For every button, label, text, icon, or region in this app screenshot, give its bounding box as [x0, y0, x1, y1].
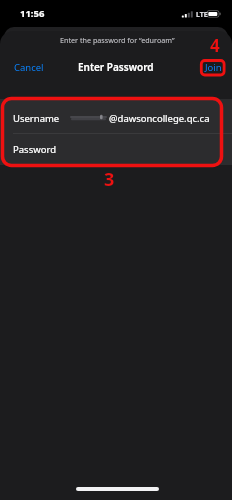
staticText: Enter the password for “eduroam”	[60, 35, 175, 45]
button[interactable]: Cancel	[0, 54, 52, 81]
button[interactable]: Username	[0, 99, 232, 133]
staticText: Join	[205, 61, 222, 74]
staticText: @dawsoncollege.qc.ca	[109, 112, 210, 125]
button[interactable]: Password	[0, 134, 232, 165]
staticText: Password	[13, 143, 56, 156]
staticText: Cancel	[14, 61, 44, 74]
staticText: Enter Password	[78, 60, 154, 74]
button[interactable]: Join	[197, 54, 232, 81]
staticText: 11:56	[20, 7, 45, 20]
staticText: Username	[13, 112, 60, 125]
staticText: LTE	[196, 10, 208, 20]
staticText: 4	[210, 34, 220, 57]
staticText: 3	[104, 167, 115, 192]
